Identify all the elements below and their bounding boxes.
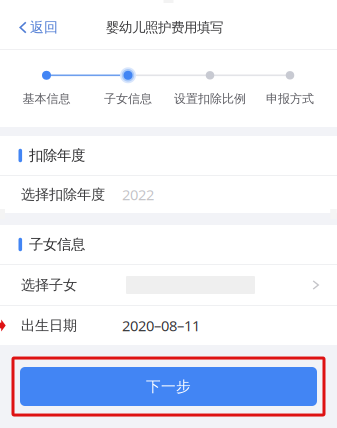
staticText: 选择扣除年度 xyxy=(21,186,105,203)
staticText: 返回 xyxy=(30,19,58,36)
button[interactable]: 出生日期 xyxy=(0,306,337,345)
staticText: 下一步 xyxy=(146,377,191,396)
staticText: 2022 xyxy=(122,184,154,204)
button[interactable]: 下一步 xyxy=(20,367,317,406)
staticText: 申报方式 xyxy=(266,91,314,106)
button[interactable]: 返回 xyxy=(3,6,69,49)
staticText: 2020–08–11 xyxy=(122,315,200,335)
staticText: 出生日期 xyxy=(21,317,77,334)
button[interactable]: 选择子女 xyxy=(0,265,337,305)
staticText: 子女信息 xyxy=(29,235,85,253)
staticText: 子女信息 xyxy=(104,91,152,106)
staticText: 婴幼儿照护费用填写 xyxy=(106,19,223,36)
button[interactable]: 选择扣除年度 xyxy=(0,176,337,213)
staticText: 设置扣除比例 xyxy=(174,91,246,106)
staticText: 基本信息 xyxy=(22,91,70,106)
staticText: 选择子女 xyxy=(21,276,77,294)
staticText: 扣除年度 xyxy=(29,146,85,164)
